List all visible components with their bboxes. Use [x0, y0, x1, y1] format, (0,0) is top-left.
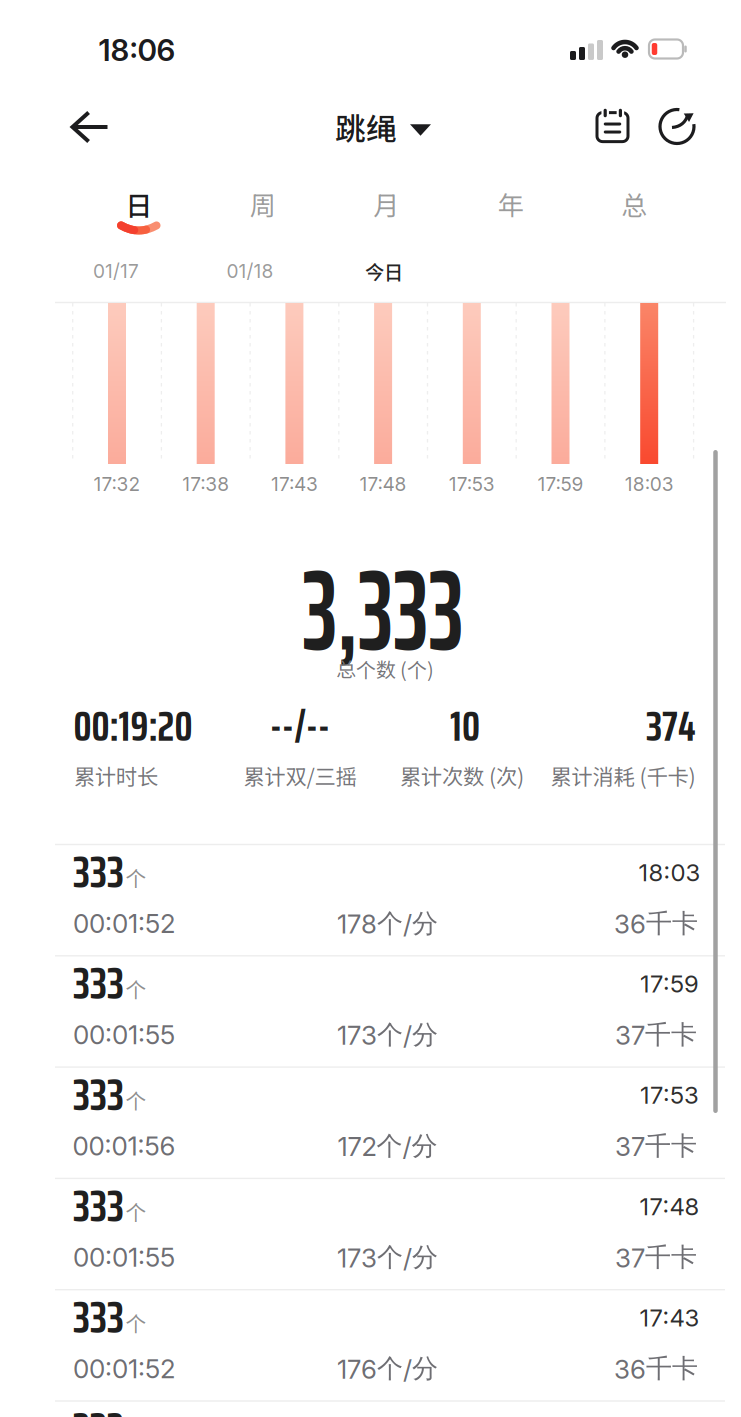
- staticText: 个: [125, 1307, 146, 1337]
- staticText: 333: [73, 948, 124, 1018]
- staticText: 333: [73, 1393, 124, 1417]
- button[interactable]: 01/17: [76, 253, 156, 289]
- staticText: 个: [125, 973, 146, 1003]
- staticText: 17:43: [639, 1303, 699, 1332]
- staticText: 累计双/三摇: [243, 760, 356, 791]
- staticText: 跳绳: [335, 105, 397, 149]
- staticText: 月: [374, 185, 400, 223]
- button[interactable]: Back: [64, 104, 115, 149]
- staticText: 17:48: [639, 1192, 699, 1221]
- staticText: 36千卡: [614, 907, 698, 940]
- staticText: 173个/分: [337, 1241, 438, 1274]
- staticText: 333: [73, 1171, 124, 1241]
- staticText: 3,333: [284, 521, 481, 699]
- button[interactable]: 跳绳: [335, 105, 431, 149]
- button[interactable]: 333: [0, 1289, 741, 1400]
- staticText: 37千卡: [615, 1130, 697, 1162]
- staticText: 00:01:55: [73, 1019, 175, 1051]
- staticText: 18:03: [625, 472, 674, 496]
- button[interactable]: 年: [465, 181, 555, 227]
- button[interactable]: 333: [0, 1400, 741, 1417]
- button[interactable]: 333: [0, 1066, 741, 1177]
- button[interactable]: 333: [0, 1177, 741, 1289]
- staticText: 01/17: [93, 259, 139, 283]
- staticText: 00:01:56: [72, 1130, 175, 1162]
- staticText: 333: [73, 1059, 124, 1130]
- staticText: 00:01:52: [73, 908, 175, 939]
- staticText: --/--: [270, 692, 330, 760]
- button[interactable]: 01/18: [210, 253, 290, 289]
- button[interactable]: 月: [342, 181, 432, 227]
- staticText: 周: [250, 185, 276, 223]
- staticText: 年: [497, 185, 523, 223]
- staticText: 17:32: [93, 472, 140, 496]
- staticText: 333: [73, 1282, 124, 1352]
- staticText: 17:43: [271, 472, 318, 496]
- button[interactable]: 333: [0, 955, 741, 1066]
- staticText: 176个/分: [337, 1352, 438, 1385]
- staticText: 37千卡: [615, 1241, 697, 1274]
- staticText: 17:59: [640, 969, 699, 998]
- staticText: 总: [621, 185, 647, 223]
- staticText: 个: [125, 862, 146, 892]
- staticText: 172个/分: [337, 1130, 437, 1162]
- staticText: 累计次数 (次): [400, 760, 524, 791]
- staticText: 00:19:20: [73, 692, 192, 760]
- staticText: 17:53: [640, 1081, 699, 1110]
- staticText: 个: [125, 1196, 146, 1226]
- staticText: 37千卡: [615, 1018, 697, 1051]
- staticText: 18:06: [98, 32, 175, 68]
- staticText: 374: [646, 692, 696, 760]
- staticText: 00:01:55: [73, 1242, 175, 1273]
- staticText: 个: [125, 1085, 146, 1114]
- staticText: 累计时长: [74, 760, 158, 791]
- button[interactable]: Records: [590, 103, 634, 149]
- staticText: 333: [73, 837, 124, 907]
- staticText: 36千卡: [614, 1352, 698, 1385]
- staticText: 总个数 (个): [336, 654, 434, 683]
- staticText: 17:38: [182, 472, 229, 496]
- button[interactable]: 周: [218, 181, 308, 227]
- staticText: 今日: [365, 257, 403, 285]
- button[interactable]: 总: [589, 181, 679, 227]
- staticText: 10: [450, 692, 480, 760]
- button[interactable]: 333: [0, 843, 741, 955]
- staticText: 17:59: [537, 472, 583, 496]
- staticText: 18:03: [638, 858, 700, 887]
- staticText: 累计消耗 (千卡): [550, 760, 695, 791]
- staticText: 00:01:52: [73, 1353, 175, 1384]
- staticText: 173个/分: [337, 1018, 438, 1051]
- button[interactable]: 日: [94, 181, 184, 227]
- staticText: 178个/分: [337, 907, 438, 940]
- staticText: 17:48: [360, 472, 407, 496]
- staticText: 17:53: [449, 472, 495, 496]
- button[interactable]: Share: [654, 103, 700, 149]
- staticText: 日: [125, 185, 152, 223]
- button[interactable]: 今日: [349, 253, 419, 289]
- staticText: 01/18: [226, 259, 273, 283]
